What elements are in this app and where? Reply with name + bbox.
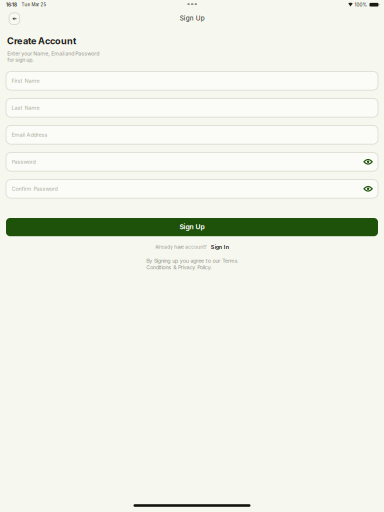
staticText: Password (12, 158, 36, 165)
staticText: By Signing up you agree to our Terms Con… (146, 257, 238, 270)
staticText: Sign Up (179, 223, 204, 231)
button[interactable]: First Name (6, 71, 378, 90)
staticText: Already have account? (155, 244, 206, 250)
staticText: 100% (354, 2, 367, 7)
staticText: 16:18 (6, 2, 17, 8)
button[interactable]: Email Address (6, 125, 378, 144)
button[interactable]: Last Name (6, 98, 378, 117)
staticText: Tue Mar 25 (21, 2, 46, 7)
button[interactable]: Confirm Password (6, 179, 378, 198)
staticText: Sign (211, 244, 222, 250)
button[interactable]: Back (8, 12, 21, 25)
button[interactable]: Password (6, 152, 378, 171)
staticText: In (224, 244, 229, 250)
staticText: Confirm Password (12, 185, 58, 192)
staticText: Enter your Name, Email and Password for … (7, 50, 99, 63)
staticText: Last Name (12, 104, 40, 111)
staticText: Email Address (12, 131, 48, 138)
button[interactable]: Sign Up (6, 218, 378, 236)
staticText: Create Account (7, 35, 76, 46)
staticText: Sign Up (180, 14, 205, 22)
button[interactable]: Sign (211, 244, 229, 250)
staticText: First Name (12, 77, 40, 84)
